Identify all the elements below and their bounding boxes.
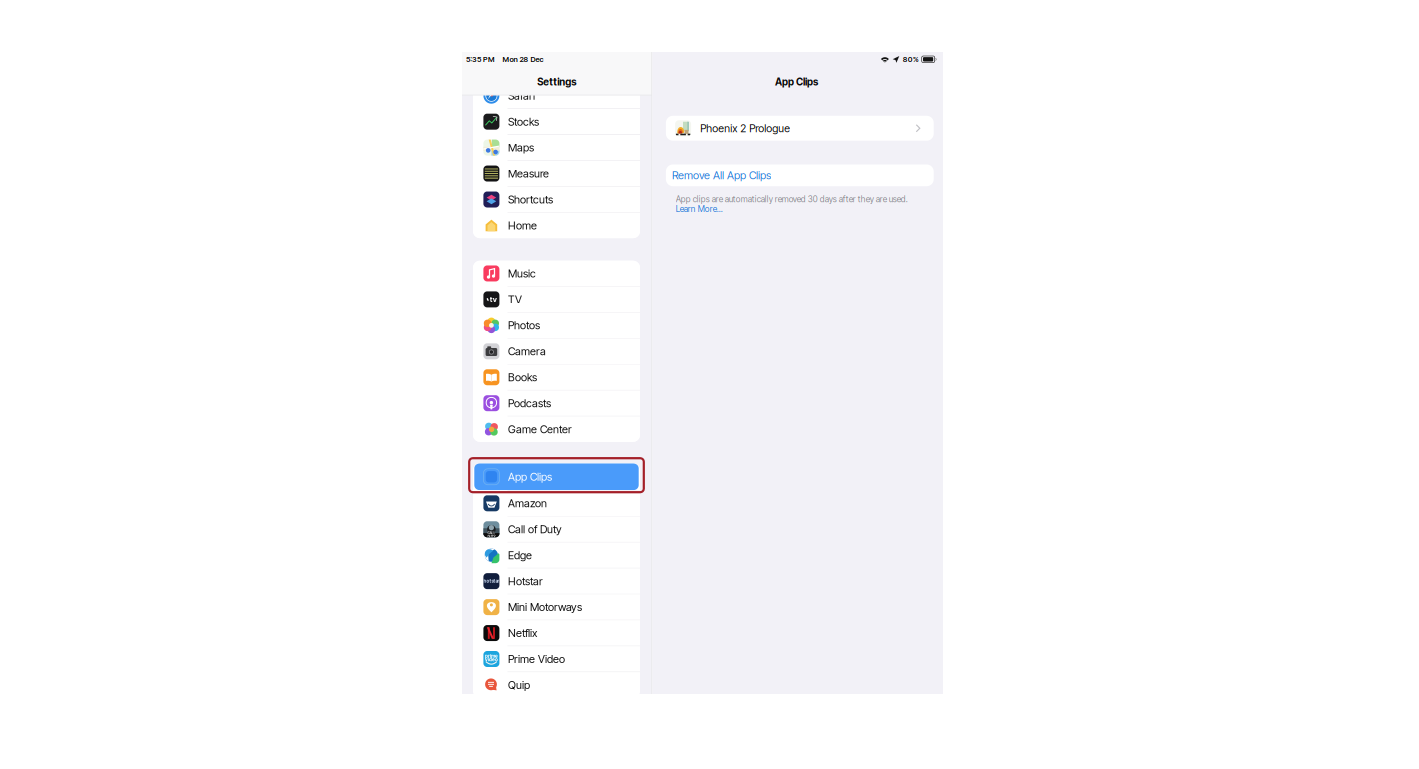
staticText: Phoenix 2 Prologue bbox=[700, 122, 790, 135]
button[interactable]: Phoenix 2 Prologue bbox=[666, 116, 934, 141]
staticText: 80% bbox=[903, 55, 919, 64]
staticText: Podcasts bbox=[508, 397, 551, 410]
button[interactable]: Camera bbox=[473, 339, 640, 364]
staticText: 5:35 PM bbox=[466, 55, 495, 64]
button[interactable]: Music bbox=[473, 261, 640, 286]
button[interactable]: Stocks bbox=[473, 109, 640, 134]
staticText: Books bbox=[508, 371, 537, 384]
staticText: Learn More... bbox=[676, 204, 723, 214]
staticText: tv bbox=[490, 295, 497, 304]
button[interactable]: Amazon bbox=[473, 491, 640, 516]
staticText: Amazon bbox=[508, 497, 547, 510]
staticText: Music bbox=[508, 267, 536, 280]
button[interactable]: Safari bbox=[473, 83, 640, 108]
staticText: Quip bbox=[508, 678, 530, 691]
staticText: Mon 28 Dec bbox=[502, 55, 543, 64]
button[interactable]: Measure bbox=[473, 161, 640, 186]
button[interactable]: Maps bbox=[473, 135, 640, 160]
button[interactable]: App Clips bbox=[473, 463, 640, 490]
staticText: Stocks bbox=[508, 115, 539, 128]
staticText: video bbox=[485, 657, 498, 662]
staticText: hotstar bbox=[483, 579, 499, 584]
staticText: Remove All App Clips bbox=[672, 169, 771, 182]
staticText: Home bbox=[508, 219, 537, 232]
staticText: Camera bbox=[508, 345, 546, 358]
staticText: Hotstar bbox=[508, 575, 543, 588]
button[interactable]: CALL DUTY bbox=[473, 516, 640, 542]
staticText: App clips are automatically removed 30 d… bbox=[676, 194, 908, 204]
button[interactable]: prime bbox=[473, 646, 640, 672]
staticText: CALL DUTY bbox=[487, 531, 495, 539]
staticText: App Clips bbox=[775, 76, 818, 88]
staticText: Edge bbox=[508, 549, 532, 562]
staticText: Settings bbox=[537, 76, 576, 88]
staticText: Prime Video bbox=[508, 653, 565, 665]
button[interactable]: Shortcuts bbox=[473, 187, 640, 212]
staticText: App Clips bbox=[508, 470, 552, 483]
button[interactable]: Home bbox=[473, 213, 640, 238]
button[interactable]: Game Center bbox=[473, 416, 640, 442]
staticText: Safari bbox=[508, 89, 535, 102]
staticText: Call of Duty bbox=[508, 523, 562, 536]
button[interactable]: Netflix bbox=[473, 620, 640, 646]
staticText: Shortcuts bbox=[508, 193, 553, 206]
button[interactable]: hotstar bbox=[473, 568, 640, 594]
button[interactable]: Photos bbox=[473, 313, 640, 338]
button[interactable]: Quip bbox=[473, 672, 640, 698]
button[interactable]: Learn More... bbox=[666, 204, 723, 214]
button[interactable]: Podcasts bbox=[473, 390, 640, 416]
staticText: Measure bbox=[508, 167, 549, 180]
staticText: Maps bbox=[508, 141, 534, 154]
button[interactable]: Mini Motorways bbox=[473, 594, 640, 620]
button[interactable]: Remove All App Clips bbox=[666, 164, 934, 186]
button[interactable]: tv bbox=[473, 287, 640, 312]
staticText: Game Center bbox=[508, 423, 572, 436]
staticText: Mini Motorways bbox=[508, 601, 582, 614]
staticText: TV bbox=[508, 293, 522, 306]
button[interactable]: Books bbox=[473, 364, 640, 390]
staticText: Netflix bbox=[508, 627, 537, 639]
button[interactable]: Edge bbox=[473, 542, 640, 568]
staticText: Photos bbox=[508, 319, 540, 332]
staticText: prime bbox=[485, 653, 498, 659]
